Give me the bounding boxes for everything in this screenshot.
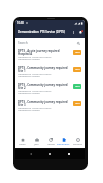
staticText: Updated on 15/03/2019 08:24 Updated by S… xyxy=(18,89,52,95)
staticText: NEW xyxy=(75,85,80,88)
staticText: Updated on 15/03/2019 08:24 Updated by S… xyxy=(18,55,52,61)
button[interactable]: Back xyxy=(28,151,34,157)
button[interactable]: Home xyxy=(47,151,53,157)
staticText: NEW xyxy=(75,51,80,54)
staticText: Documents xyxy=(57,143,70,146)
staticText: NEW xyxy=(75,68,80,71)
button[interactable]: DPTS - Community journey required Site 3 xyxy=(15,99,85,116)
button[interactable]: Search xyxy=(76,41,81,46)
button[interactable]: Documents xyxy=(57,138,70,146)
staticText: DPTS - Acute journey required Hospital A xyxy=(18,49,60,56)
staticText: DPTS - Community journey required Site 3 xyxy=(18,100,68,107)
button[interactable]: Recents xyxy=(66,151,72,157)
button[interactable]: Home xyxy=(16,138,29,146)
staticText: DPTS - Community journey required Site 2 xyxy=(18,83,68,90)
button[interactable]: Menu xyxy=(71,30,76,35)
staticText: Update xyxy=(47,143,55,146)
staticText: Updated on 15/03/2019 08:24 Updated by S… xyxy=(18,106,52,112)
button[interactable]: Jobs xyxy=(30,138,43,146)
staticText: Demonstration PTS Service (DPTS) xyxy=(18,30,65,34)
button[interactable]: DPTS - Acute journey required Hospital A xyxy=(15,48,85,65)
staticText: DPTS - Community journey required Site 1 xyxy=(18,66,68,73)
staticText: Home xyxy=(19,143,26,146)
staticText: Jobs xyxy=(34,143,39,146)
staticText: 10:30 xyxy=(17,21,24,25)
staticText: Settings xyxy=(73,143,82,146)
staticText: NEW xyxy=(75,102,80,105)
staticText: Updated on 15/03/2019 08:24 Updated by S… xyxy=(18,72,52,78)
button[interactable]: Update xyxy=(44,138,57,146)
button[interactable]: DPTS - Community journey required Site 1 xyxy=(15,65,85,82)
staticText: Search xyxy=(18,41,28,45)
button[interactable]: Notifications xyxy=(77,29,83,35)
button[interactable]: DPTS - Community journey required Site 2 xyxy=(15,82,85,99)
button[interactable]: Settings xyxy=(71,138,84,146)
